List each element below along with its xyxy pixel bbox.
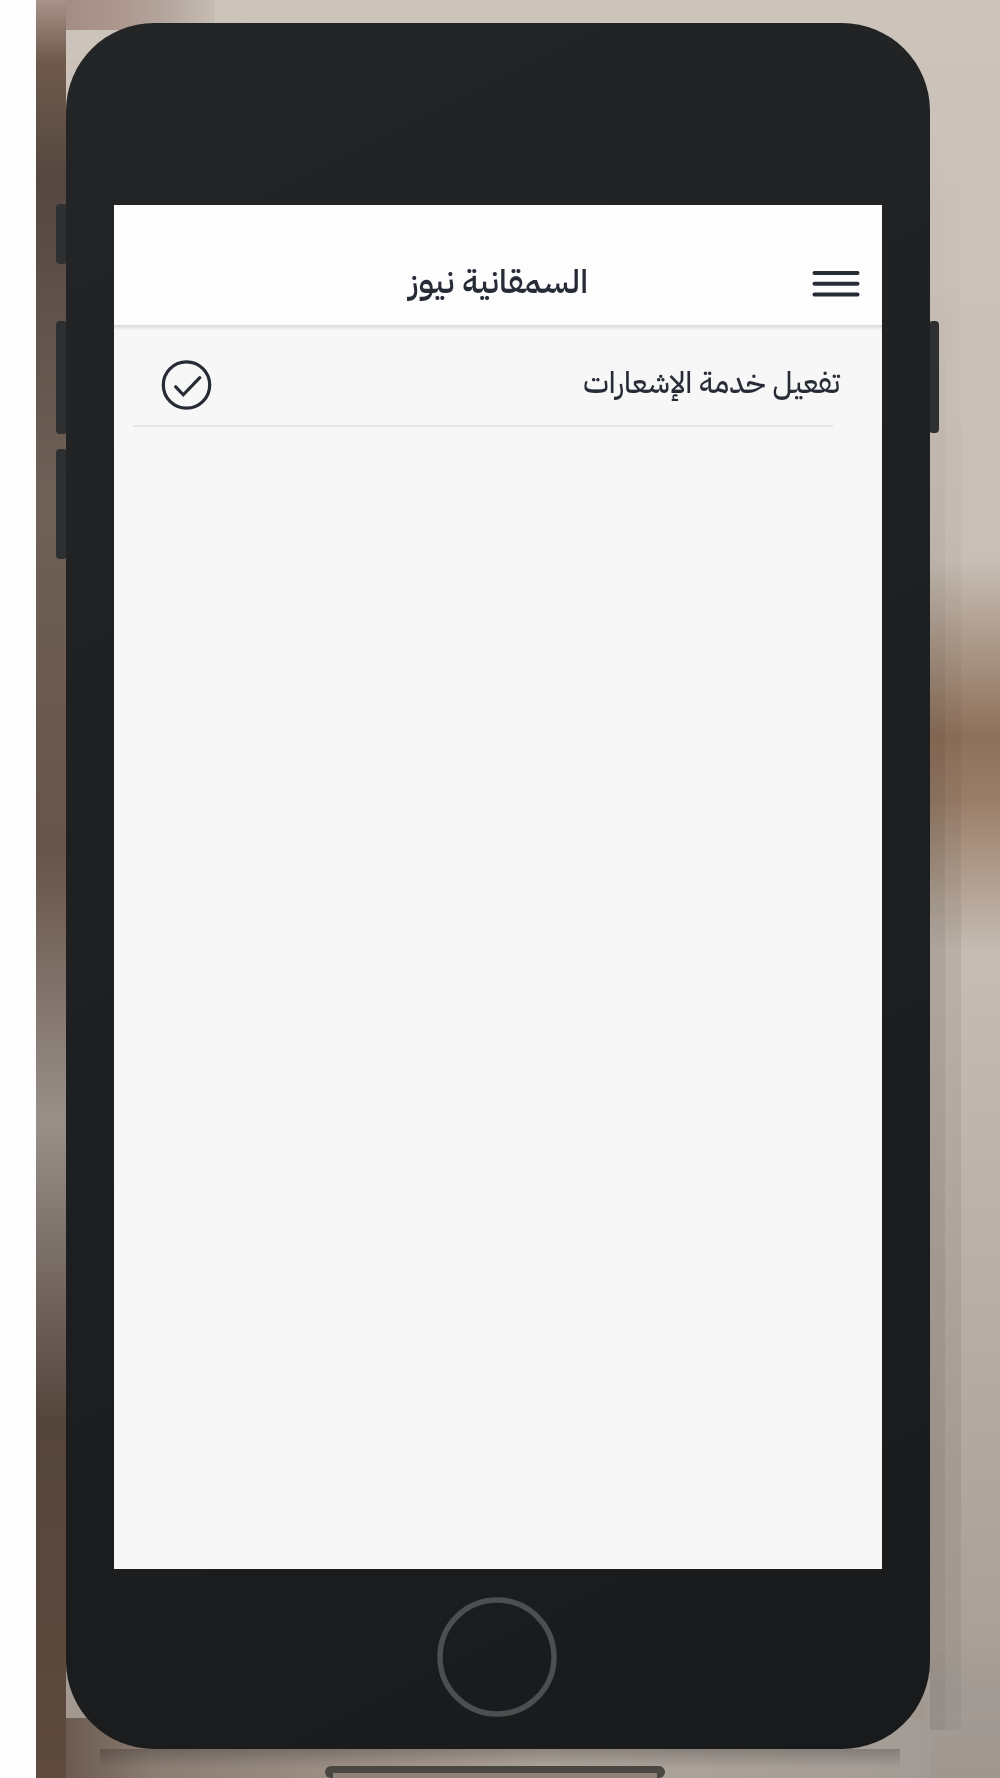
button[interactable] <box>797 257 875 311</box>
staticText: السمقانية نيوز <box>409 257 588 307</box>
staticText: تفعيل خدمة الإشعارات <box>583 360 841 405</box>
button[interactable]: تفعيل خدمة الإشعارات <box>114 325 882 425</box>
